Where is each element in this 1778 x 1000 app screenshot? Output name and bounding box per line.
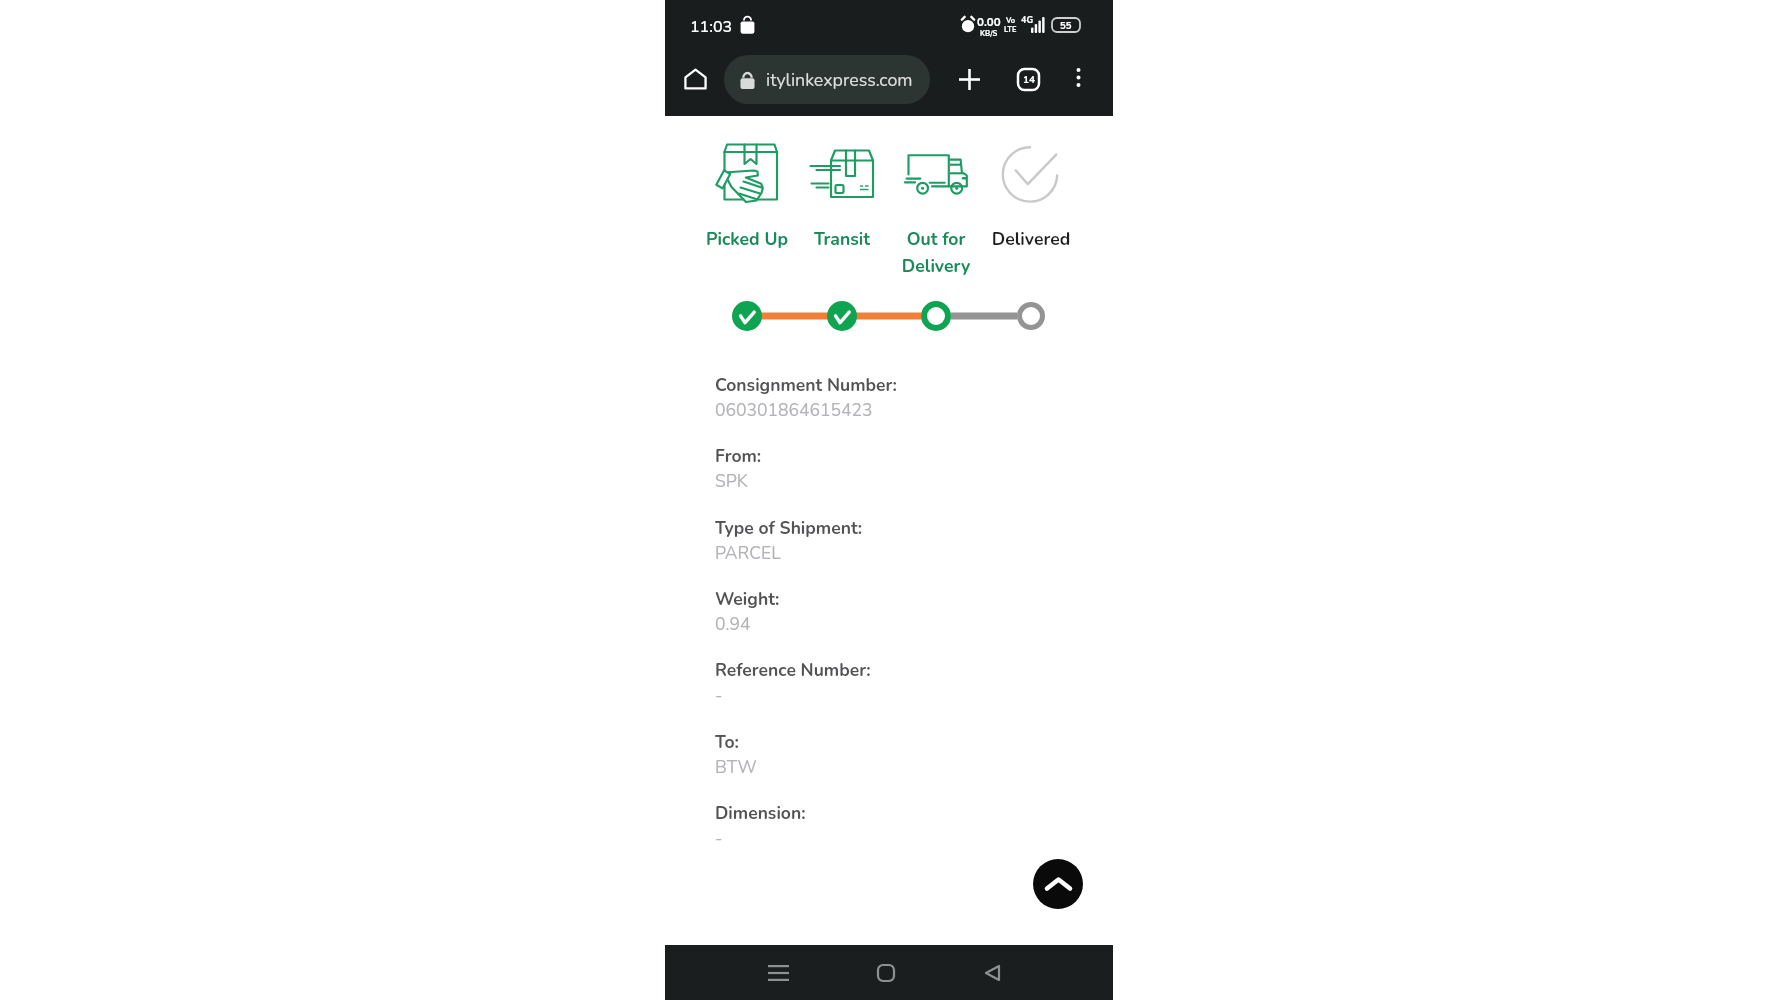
button[interactable]: New tab: [952, 62, 986, 96]
staticText: To:: [715, 730, 739, 754]
button[interactable]: Picked Up: [700, 140, 794, 285]
staticText: Vo: [1006, 15, 1016, 25]
staticText: PARCEL: [715, 541, 781, 565]
staticText: 0.00: [977, 14, 1001, 30]
staticText: Reference Number:: [715, 658, 871, 682]
staticText: 11:03: [690, 16, 733, 38]
staticText: Delivered: [984, 227, 1078, 251]
button[interactable]: Back: [969, 949, 1016, 996]
staticText: 14: [1023, 73, 1035, 87]
staticText: SPK: [715, 469, 748, 493]
button[interactable]: More options: [1063, 62, 1093, 92]
staticText: itylinkexpress.com: [766, 68, 913, 92]
staticText: 4G: [1021, 14, 1034, 26]
staticText: 55: [1060, 19, 1072, 32]
staticText: LTE: [1004, 24, 1017, 34]
staticText: Dimension:: [715, 801, 806, 825]
staticText: -: [715, 683, 723, 707]
staticText: Picked Up: [700, 227, 794, 251]
button[interactable]: Delivered: [984, 140, 1078, 285]
button[interactable]: Out for Delivery: [889, 140, 983, 285]
staticText: From:: [715, 444, 762, 468]
button[interactable]: Tabs: [1011, 62, 1045, 96]
button[interactable]: Scroll to top: [1033, 859, 1083, 909]
button[interactable]: Transit: [795, 140, 889, 285]
staticText: Transit: [795, 227, 889, 251]
staticText: Weight:: [715, 587, 780, 611]
staticText: BTW: [715, 755, 757, 779]
staticText: Consignment Number:: [715, 373, 897, 397]
staticText: 060301864615423: [715, 398, 873, 422]
button[interactable]: Recents: [755, 949, 802, 996]
staticText: Type of Shipment:: [715, 516, 862, 540]
staticText: 0.94: [715, 612, 751, 636]
button[interactable]: itylinkexpress.com: [724, 55, 930, 104]
staticText: Out for Delivery: [889, 227, 983, 278]
staticText: -: [715, 826, 723, 850]
button[interactable]: Home: [862, 949, 909, 996]
staticText: KB/S: [980, 28, 998, 38]
button[interactable]: Home: [678, 62, 712, 96]
